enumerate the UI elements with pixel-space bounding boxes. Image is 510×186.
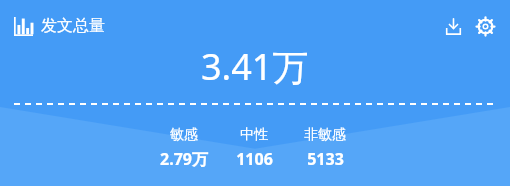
staticText: 中性 bbox=[240, 126, 268, 144]
staticText: 3.41万 bbox=[201, 42, 309, 91]
staticText: 2.79万 bbox=[160, 148, 208, 170]
staticText: 5133 bbox=[307, 148, 344, 170]
staticText: 非敏感 bbox=[304, 126, 346, 144]
button[interactable]: Settings bbox=[472, 13, 498, 39]
button[interactable]: 中性 bbox=[221, 126, 287, 170]
staticText: 敏感 bbox=[170, 126, 198, 144]
button[interactable]: 非敏感 bbox=[287, 126, 363, 170]
button[interactable]: 敏感 bbox=[147, 126, 221, 170]
staticText: 1106 bbox=[236, 148, 273, 170]
button[interactable]: Download bbox=[440, 13, 466, 39]
staticText: 发文总量 bbox=[41, 16, 105, 36]
